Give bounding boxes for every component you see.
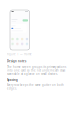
staticText: Every row keeps the same gutter on both … [7, 83, 64, 90]
staticText: The home screen groups its primary actio… [7, 65, 66, 76]
staticText: Figure 1 — Home [7, 52, 32, 56]
staticText: Spacing [7, 78, 18, 82]
staticText: Design notes [7, 59, 26, 63]
